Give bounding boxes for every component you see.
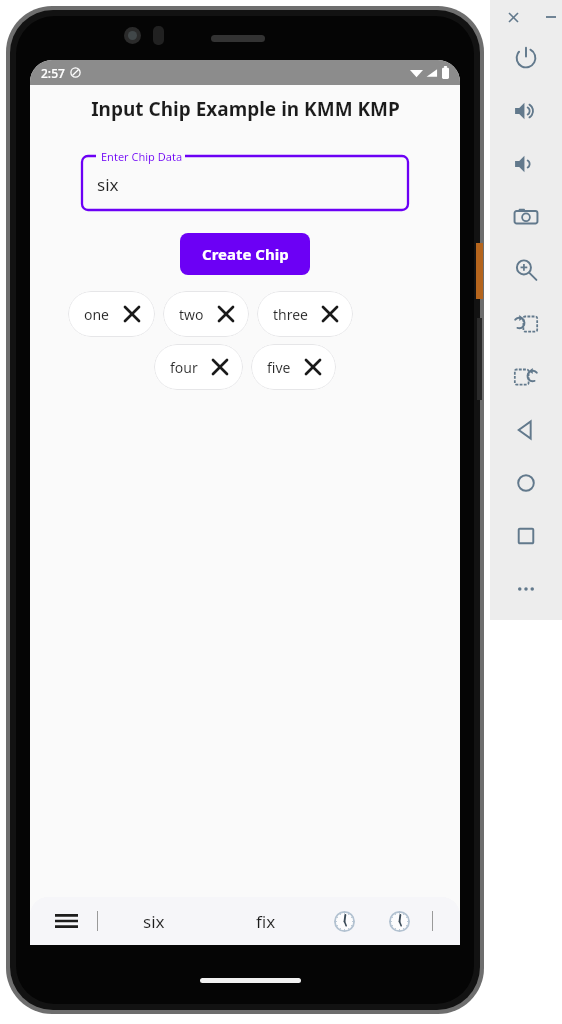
button[interactable]: Keyboard menu: [48, 903, 84, 939]
staticText: one: [84, 305, 110, 324]
button[interactable]: Rotate left: [490, 300, 562, 346]
button[interactable]: Recents: [490, 513, 562, 559]
button[interactable]: fix: [210, 897, 322, 945]
button[interactable]: Create Chip: [180, 233, 310, 275]
staticText: six: [97, 173, 119, 196]
button[interactable]: Take screenshot: [490, 194, 562, 240]
staticText: two: [179, 305, 204, 324]
button[interactable]: four: [154, 344, 243, 390]
button[interactable]: Zoom: [490, 247, 562, 293]
button[interactable]: Emoji suggestion: [385, 907, 413, 935]
staticText: six: [143, 910, 165, 933]
button[interactable]: three: [257, 291, 353, 337]
button[interactable]: Volume down: [490, 141, 562, 187]
button[interactable]: Remove four: [211, 358, 229, 376]
staticText: three: [273, 305, 308, 324]
button[interactable]: Emoji suggestion: [330, 907, 358, 935]
button[interactable]: Remove three: [321, 305, 339, 323]
button[interactable]: Remove five: [304, 358, 322, 376]
button[interactable]: Back: [490, 407, 562, 453]
button[interactable]: More: [490, 566, 562, 612]
button[interactable]: one: [68, 291, 155, 337]
staticText: 2:57: [41, 65, 65, 81]
button[interactable]: Home: [490, 460, 562, 506]
button[interactable]: Remove two: [217, 305, 235, 323]
button[interactable]: Minimize: [540, 6, 562, 28]
staticText: Input Chip Example in KMM KMP: [91, 96, 400, 122]
staticText: fix: [256, 910, 276, 933]
button[interactable]: six: [98, 897, 210, 945]
button[interactable]: Remove one: [123, 305, 141, 323]
staticText: Enter Chip Data: [101, 149, 183, 164]
button[interactable]: two: [163, 291, 249, 337]
staticText: five: [267, 358, 291, 377]
staticText: four: [170, 358, 198, 377]
button[interactable]: Power: [490, 35, 562, 81]
button[interactable]: Rotate right: [490, 353, 562, 399]
button[interactable]: Close: [502, 6, 524, 28]
button[interactable]: five: [251, 344, 336, 390]
button[interactable]: Enter Chip Data: [82, 148, 408, 210]
staticText: Create Chip: [202, 244, 289, 264]
button[interactable]: Volume up: [490, 88, 562, 134]
